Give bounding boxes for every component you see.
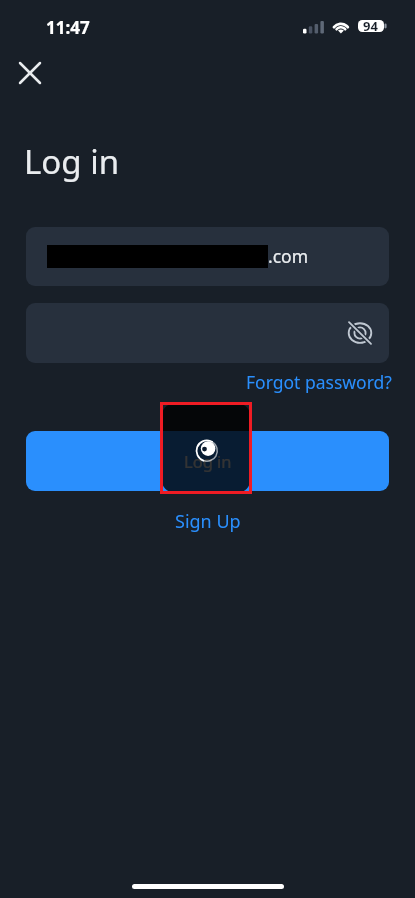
staticText: 94 [363,17,378,35]
staticText: Log in [184,450,232,472]
button[interactable]: Sign Up [171,505,245,538]
button[interactable]: Close [12,55,48,91]
button[interactable]: .com [26,227,389,286]
staticText: Log in [24,139,120,184]
button[interactable]: Forgot password? [244,368,394,396]
staticText: Forgot password? [246,370,392,394]
button[interactable]: Tap target highlight [160,402,252,494]
staticText: Sign Up [175,509,241,534]
staticText: 11:47 [46,16,90,39]
button[interactable]: Show password [342,315,378,351]
button[interactable]: Show password [26,303,389,363]
button[interactable]: Log in [26,431,389,491]
staticText: .com [268,244,309,268]
